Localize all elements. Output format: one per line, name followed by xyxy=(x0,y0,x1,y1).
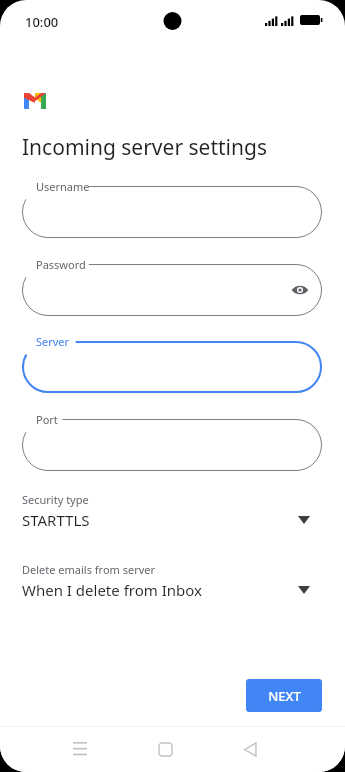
button[interactable]: Username xyxy=(22,186,322,238)
button[interactable]: Back xyxy=(230,729,270,769)
staticText: NEXT xyxy=(268,687,301,705)
staticText: Security type xyxy=(22,492,89,507)
staticText: STARTTLS xyxy=(22,510,90,530)
button[interactable]: Server xyxy=(22,341,322,393)
staticText: Server xyxy=(36,334,70,349)
staticText: 10:00 xyxy=(25,13,59,31)
button[interactable]: Password xyxy=(22,264,322,316)
staticText: When I delete from Inbox xyxy=(22,580,202,600)
staticText: Password xyxy=(36,257,86,272)
staticText: Port xyxy=(36,412,58,427)
staticText: Incoming server settings xyxy=(22,133,267,162)
button[interactable]: Security type xyxy=(0,492,345,540)
button[interactable]: NEXT xyxy=(246,679,322,712)
button[interactable]: Delete emails from server xyxy=(0,562,345,610)
button[interactable]: Port xyxy=(22,419,322,471)
staticText: Username xyxy=(36,179,90,194)
staticText: Delete emails from server xyxy=(22,562,156,577)
button[interactable]: Recents xyxy=(60,729,100,769)
button[interactable]: Show password xyxy=(288,278,312,302)
button[interactable]: Home xyxy=(145,729,185,769)
